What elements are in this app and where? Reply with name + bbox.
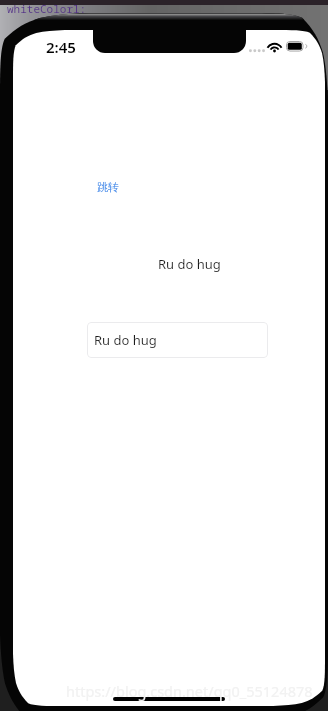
staticText: Ru do hug bbox=[158, 255, 221, 273]
staticText: https://blog.csdn.net/qq0_55124878 bbox=[66, 681, 313, 701]
other: Cellular signal bbox=[249, 42, 265, 52]
other: Wi-Fi bbox=[268, 42, 281, 52]
button[interactable]: Ru do hug bbox=[87, 322, 268, 358]
staticText: Ru do hug bbox=[94, 331, 157, 349]
other: Home indicator bbox=[113, 697, 225, 701]
staticText: 2:45 bbox=[46, 37, 76, 57]
staticText: 跳转 bbox=[97, 180, 119, 194]
button[interactable]: 跳转 bbox=[97, 180, 119, 194]
other: Battery bbox=[286, 41, 305, 52]
staticText: whiteColorl: bbox=[7, 1, 87, 16]
